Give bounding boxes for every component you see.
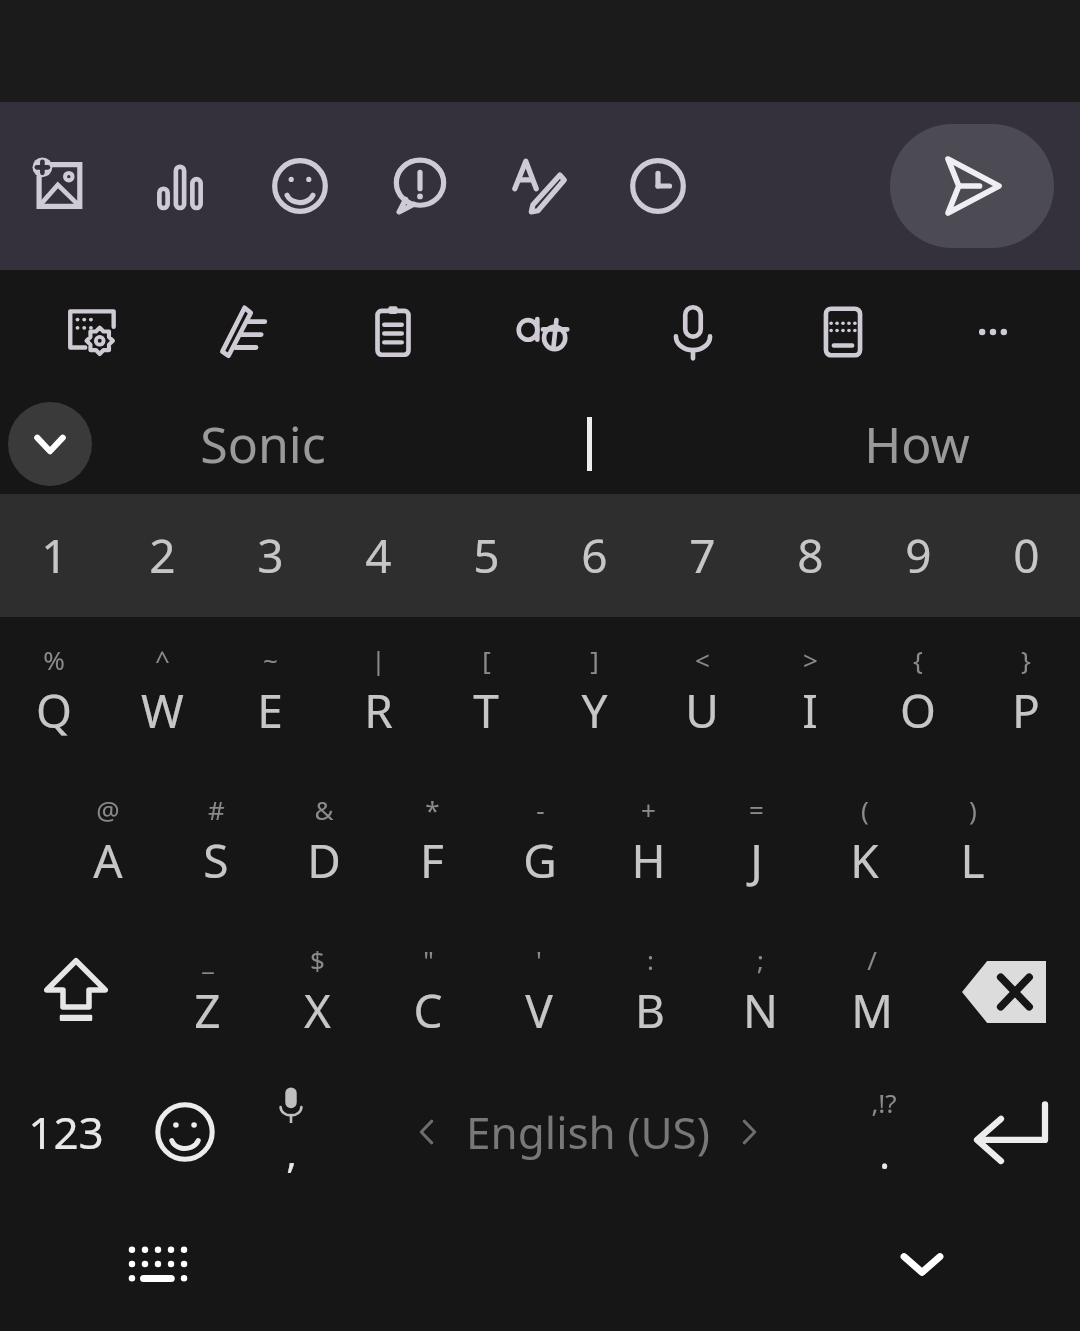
button[interactable]: @ <box>54 767 162 917</box>
button[interactable]: Switch keyboard <box>103 1209 213 1319</box>
button[interactable]: , <box>238 1067 344 1197</box>
staticText: 5 <box>473 524 500 587</box>
staticText: H <box>631 829 666 892</box>
button[interactable]: One handed <box>768 270 918 394</box>
button[interactable]: ' <box>483 917 594 1067</box>
button[interactable]: _ <box>152 917 262 1067</box>
button[interactable]: 6 <box>540 494 648 617</box>
button[interactable]: Poll <box>120 102 240 270</box>
button[interactable]: # <box>162 767 270 917</box>
button[interactable]: * <box>378 767 486 917</box>
staticText: P <box>1012 679 1040 742</box>
button[interactable]: Add image <box>0 102 120 270</box>
button[interactable]: 3 <box>216 494 324 617</box>
button[interactable]: ; <box>705 917 816 1067</box>
staticText: ^ <box>155 642 170 677</box>
button[interactable]: Handwriting <box>168 270 318 394</box>
button[interactable]: Hide keyboard <box>867 1209 977 1319</box>
button[interactable]: Send <box>890 124 1054 248</box>
staticText: ,!? <box>871 1085 897 1120</box>
button[interactable]: / <box>816 917 927 1067</box>
button[interactable]: 123 <box>0 1067 132 1197</box>
button[interactable]: = <box>702 767 810 917</box>
button[interactable]: ^ <box>108 617 216 767</box>
button[interactable]: Keyboard settings <box>18 270 168 394</box>
staticText: , <box>286 1125 297 1179</box>
staticText: Y <box>581 679 608 742</box>
staticText: ~ <box>263 642 278 677</box>
staticText: L <box>960 829 985 892</box>
staticText: English (US) <box>466 1102 710 1162</box>
staticText: C <box>413 979 443 1042</box>
button[interactable]: } <box>972 617 1080 767</box>
button[interactable] <box>426 394 753 494</box>
staticText: * <box>425 792 440 827</box>
button[interactable]: : <box>594 917 705 1067</box>
button[interactable]: Clipboard <box>318 270 468 394</box>
staticText: / <box>867 942 877 977</box>
staticText: 7 <box>689 524 716 587</box>
button[interactable]: % <box>0 617 108 767</box>
button[interactable]: > <box>756 617 864 767</box>
button[interactable]: English (US) <box>344 1067 831 1197</box>
button[interactable]: Emoji <box>240 102 360 270</box>
button[interactable]: Sonic <box>100 394 426 494</box>
button[interactable]: " <box>372 917 483 1067</box>
staticText: B <box>635 979 665 1042</box>
staticText: G <box>523 829 557 892</box>
staticText: N <box>743 979 778 1042</box>
button[interactable]: 4 <box>324 494 432 617</box>
staticText: ] <box>590 642 599 677</box>
button[interactable]: + <box>594 767 702 917</box>
button[interactable]: 1 <box>0 494 108 617</box>
button[interactable]: | <box>324 617 432 767</box>
staticText: ) <box>969 792 977 827</box>
button[interactable]: Voice input <box>618 270 768 394</box>
button[interactable]: ( <box>810 767 918 917</box>
button[interactable]: 2 <box>108 494 216 617</box>
staticText: How <box>864 410 970 478</box>
button[interactable]: { <box>864 617 972 767</box>
button[interactable]: [ <box>432 617 540 767</box>
button[interactable]: 5 <box>432 494 540 617</box>
staticText: . <box>879 1126 890 1180</box>
button[interactable]: ~ <box>216 617 324 767</box>
staticText: T <box>473 679 499 742</box>
button[interactable]: ) <box>918 767 1026 917</box>
button[interactable]: Reaction <box>360 102 480 270</box>
button[interactable]: How <box>753 394 1080 494</box>
button[interactable]: ] <box>540 617 648 767</box>
staticText: W <box>141 679 184 742</box>
button[interactable]: Backspace <box>927 917 1080 1067</box>
staticText: _ <box>202 942 214 977</box>
button[interactable]: Recent <box>598 102 718 270</box>
button[interactable]: < <box>648 617 756 767</box>
button[interactable]: 8 <box>756 494 864 617</box>
staticText: S <box>203 829 229 892</box>
staticText: A <box>93 829 123 892</box>
staticText: O <box>900 679 936 742</box>
staticText: V <box>525 979 553 1042</box>
staticText: @ <box>96 792 120 827</box>
staticText: 123 <box>28 1102 104 1162</box>
button[interactable]: ,!? <box>831 1067 937 1197</box>
staticText: [ <box>482 642 491 677</box>
button[interactable]: Shift <box>0 917 152 1067</box>
staticText: | <box>371 642 386 677</box>
button[interactable]: 9 <box>864 494 972 617</box>
button[interactable]: & <box>270 767 378 917</box>
button[interactable]: Emoji <box>132 1067 238 1197</box>
button[interactable]: More options <box>918 270 1068 394</box>
button[interactable]: Expand <box>8 402 92 486</box>
button[interactable]: 7 <box>648 494 756 617</box>
button[interactable]: Translate <box>468 270 618 394</box>
button[interactable]: Handwriting <box>480 102 598 270</box>
staticText: < <box>695 642 710 677</box>
button[interactable]: Enter <box>937 1067 1080 1197</box>
staticText: 0 <box>1013 524 1040 587</box>
button[interactable]: 0 <box>972 494 1080 617</box>
button[interactable]: $ <box>262 917 372 1067</box>
button[interactable]: - <box>486 767 594 917</box>
staticText: Q <box>36 679 72 742</box>
staticText: 3 <box>257 524 284 587</box>
